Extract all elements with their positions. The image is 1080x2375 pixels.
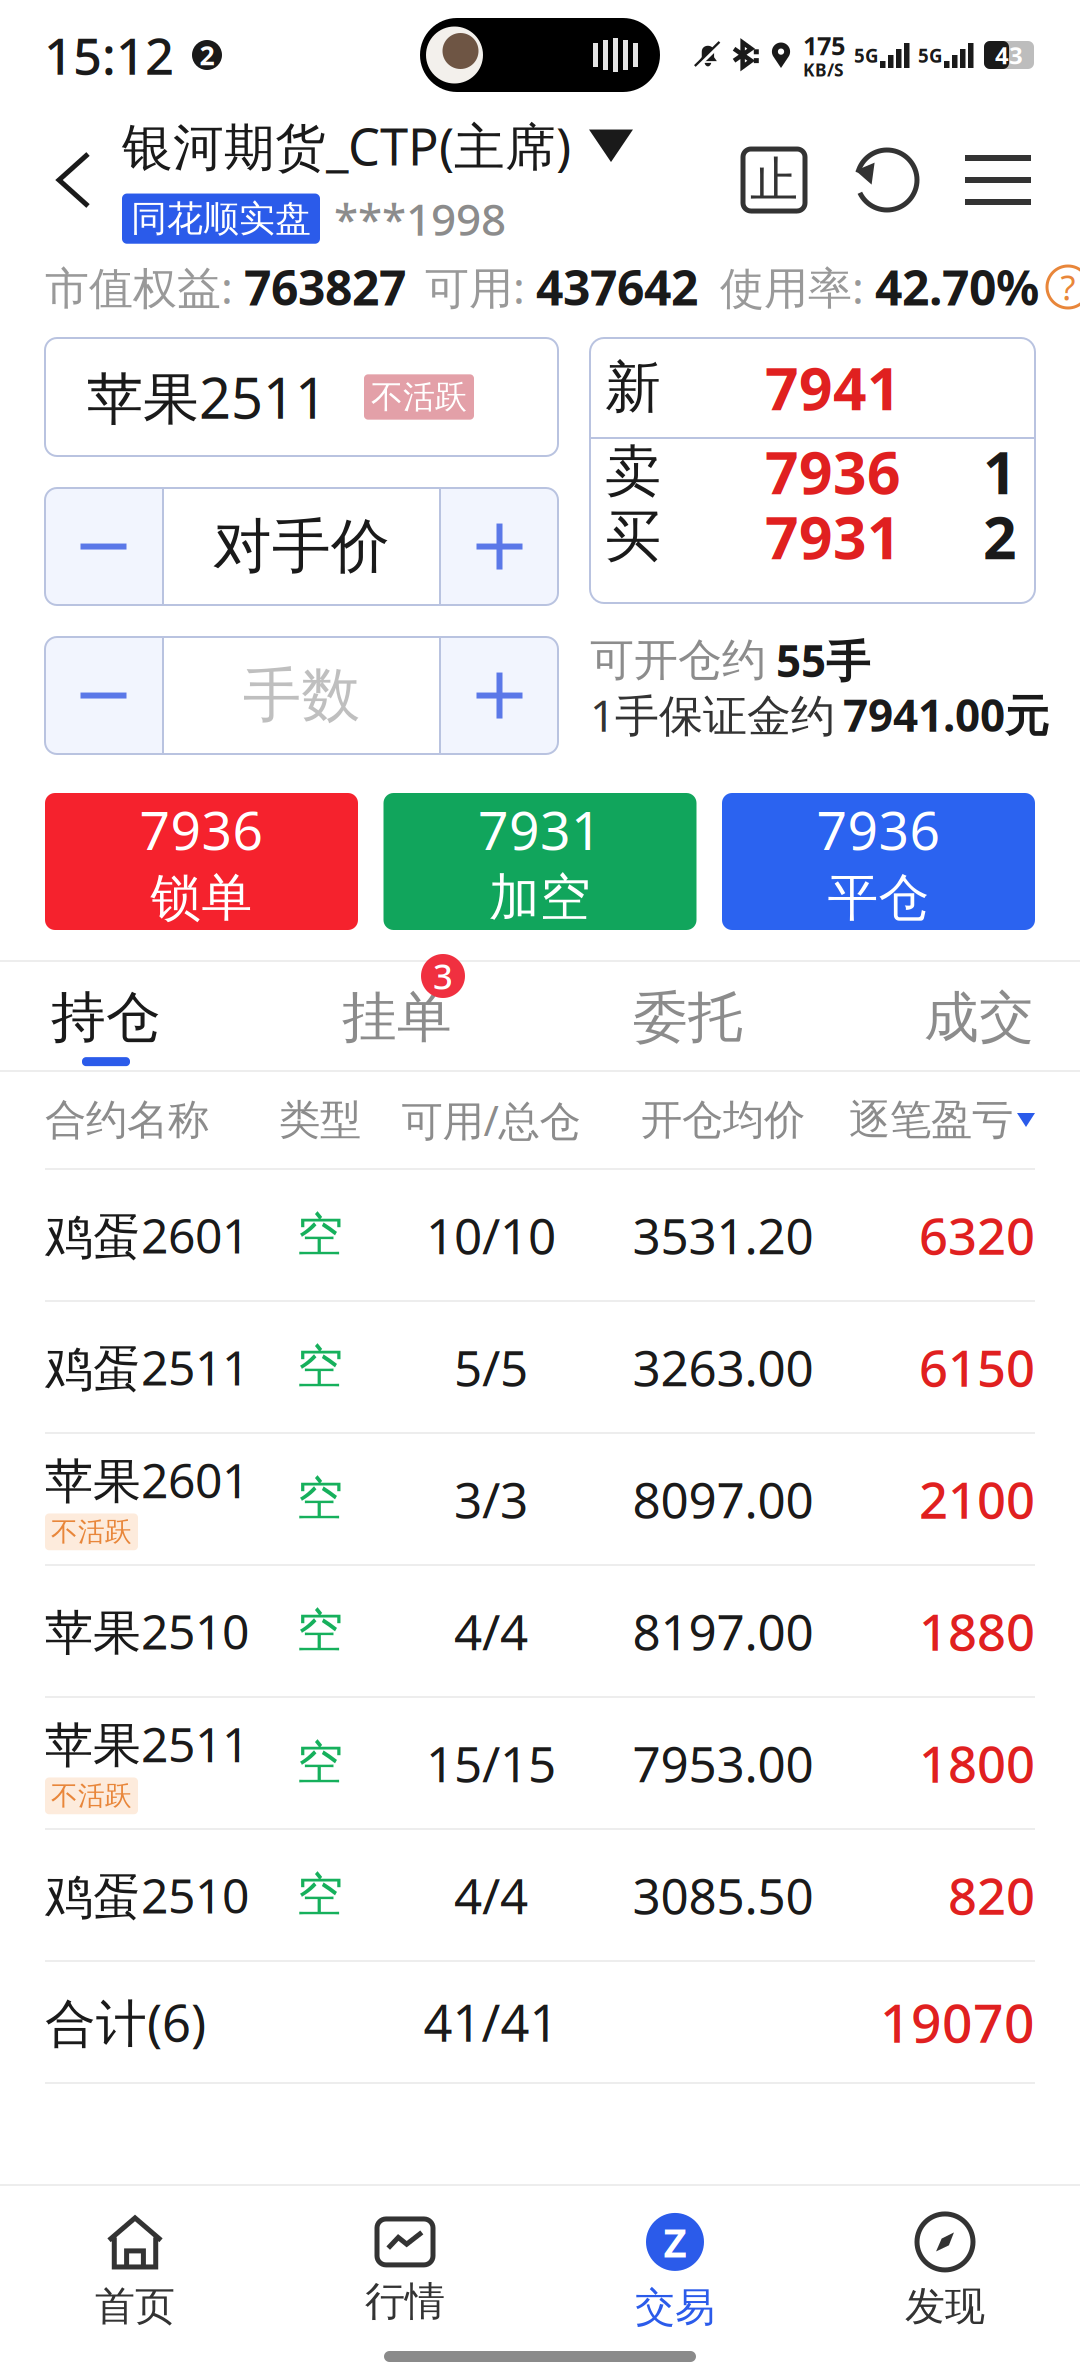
button[interactable]: 发现	[810, 2197, 1080, 2347]
staticText: 2	[199, 37, 214, 73]
staticText: 持仓	[51, 984, 161, 1051]
staticText: 空	[296, 1338, 343, 1396]
staticText: 8197.00	[632, 1598, 813, 1664]
staticText: 7936	[139, 794, 263, 865]
staticText: 止	[750, 150, 798, 209]
staticText: 不活跃	[51, 1515, 132, 1548]
staticText: 7931	[478, 794, 602, 865]
button[interactable]: 鸡蛋2511	[0, 1302, 1080, 1432]
staticText: 手数	[242, 659, 360, 732]
staticText: 175	[803, 29, 845, 62]
staticText: 买	[605, 502, 661, 571]
staticText: 空	[296, 1734, 343, 1792]
staticText: 2	[983, 497, 1017, 575]
button[interactable]: 7936	[722, 793, 1035, 930]
button[interactable]: 加	[441, 637, 558, 754]
staticText: 6320	[919, 1201, 1035, 1269]
staticText: 可用:	[425, 258, 536, 316]
staticText: 交易	[635, 2283, 715, 2332]
staticText: 银河期货_CTP(主席)	[122, 112, 571, 179]
staticText: 763827	[244, 255, 406, 319]
staticText: 1手保证金约	[590, 685, 835, 744]
staticText: 437642	[536, 255, 698, 319]
button[interactable]: 挂单	[307, 962, 487, 1070]
staticText: 鸡蛋2510	[45, 1863, 249, 1927]
staticText: 加空	[489, 867, 591, 929]
staticText: 10/10	[426, 1202, 556, 1268]
button[interactable]: 行情	[270, 2197, 540, 2347]
button[interactable]: 刷新	[828, 120, 946, 240]
staticText: 市值权益:	[45, 258, 244, 316]
staticText: KB/S	[803, 58, 844, 81]
staticText: 挂单	[342, 984, 452, 1051]
button[interactable]: 苹果2510	[0, 1566, 1080, 1696]
staticText: 15:12	[44, 21, 174, 89]
button[interactable]: 成交	[889, 962, 1069, 1070]
staticText: 7936	[765, 432, 901, 510]
staticText: 新	[605, 353, 661, 422]
staticText: 3	[433, 953, 453, 999]
staticText: 空	[296, 1470, 343, 1528]
staticText: 开仓均价	[641, 1095, 805, 1145]
staticText: 3531.20	[632, 1202, 813, 1268]
staticText: 合约名称	[45, 1095, 209, 1145]
button[interactable]: 苹果2601	[0, 1434, 1080, 1564]
staticText: 委托	[633, 984, 743, 1051]
button[interactable]: 鸡蛋2510	[0, 1830, 1080, 1960]
button[interactable]: 银河期货_CTP(主席)	[122, 112, 633, 248]
staticText: ?	[1060, 264, 1075, 310]
button[interactable]: 7936	[45, 793, 358, 930]
staticText: Z	[663, 2215, 686, 2268]
staticText: 使用率:	[720, 258, 875, 316]
button[interactable]: 加	[441, 488, 558, 605]
staticText: 空	[296, 1206, 343, 1264]
staticText: 7936	[816, 794, 940, 865]
staticText: 逐笔盈亏	[849, 1095, 1013, 1145]
staticText: 41/41	[423, 1988, 558, 2056]
staticText: 1800	[919, 1729, 1035, 1797]
staticText: 3/3	[454, 1466, 528, 1532]
button[interactable]: 菜单	[946, 120, 1050, 240]
button[interactable]: 对手价	[164, 488, 439, 605]
button[interactable]: 7931	[383, 793, 696, 930]
staticText: 可用/总仓	[401, 1093, 580, 1147]
staticText: 5/5	[454, 1334, 528, 1400]
staticText: 7953.00	[632, 1730, 813, 1796]
button[interactable]: 持仓	[16, 962, 196, 1070]
staticText: 鸡蛋2511	[45, 1335, 249, 1399]
staticText: 7941	[765, 348, 901, 426]
staticText: 空	[296, 1602, 343, 1660]
staticText: 对手价	[213, 510, 390, 583]
staticText: 锁单	[150, 867, 252, 929]
button[interactable]: 苹果2511	[45, 338, 558, 456]
staticText: 空	[296, 1866, 343, 1924]
staticText: 苹果2510	[45, 1599, 249, 1663]
staticText: 卖	[605, 437, 661, 506]
staticText: 7931	[765, 497, 901, 575]
staticText: 820	[948, 1861, 1035, 1929]
staticText: ***1998	[334, 189, 506, 248]
button[interactable]: 首页	[0, 2197, 270, 2347]
button[interactable]: 止盈止损	[720, 120, 828, 240]
button[interactable]: 返回	[22, 120, 122, 240]
staticText: 19070	[880, 1987, 1035, 2057]
staticText: 15/15	[426, 1730, 556, 1796]
staticText: 不活跃	[371, 377, 467, 417]
staticText: 55手	[776, 631, 870, 689]
button[interactable]: Z	[540, 2197, 810, 2347]
button[interactable]: 鸡蛋2601	[0, 1170, 1080, 1300]
button[interactable]: 委托	[598, 962, 778, 1070]
staticText: 发现	[905, 2282, 985, 2331]
staticText: 苹果2601	[45, 1448, 249, 1511]
staticText: 行情	[365, 2277, 445, 2326]
staticText: 类型	[279, 1095, 361, 1145]
staticText: 2100	[919, 1465, 1035, 1533]
button[interactable]: 苹果2511	[0, 1698, 1080, 1828]
staticText: 5G	[854, 43, 879, 68]
staticText: 3085.50	[632, 1862, 813, 1928]
staticText: 3263.00	[632, 1334, 813, 1400]
button[interactable]: 减	[45, 637, 162, 754]
button[interactable]: 手数	[164, 637, 439, 754]
button[interactable]: 减	[45, 488, 162, 605]
staticText: 1880	[919, 1597, 1035, 1665]
